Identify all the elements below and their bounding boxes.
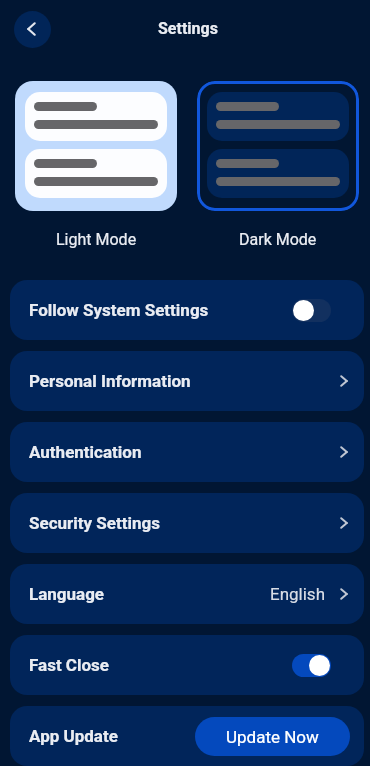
button[interactable]: Update Now [195, 717, 350, 756]
button[interactable]: Security Settings [10, 493, 364, 553]
staticText: Language [29, 584, 105, 604]
staticText: English [270, 584, 326, 604]
staticText: Fast Close [29, 655, 109, 675]
staticText: Authentication [29, 442, 142, 462]
staticText: App Update [29, 726, 118, 746]
button[interactable]: Light Mode [15, 81, 177, 211]
button[interactable]: App Update [10, 706, 364, 766]
button[interactable]: Language [10, 564, 364, 624]
staticText: Personal Information [29, 371, 191, 391]
staticText: Light Mode [56, 230, 137, 249]
button[interactable]: Enabled [292, 654, 331, 677]
staticText: Settings [158, 19, 218, 38]
button[interactable]: Follow System Settings [10, 280, 364, 340]
button[interactable]: Back [14, 11, 51, 48]
staticText: Dark Mode [239, 230, 317, 249]
staticText: Update Now [226, 727, 319, 747]
staticText: Security Settings [29, 513, 160, 533]
button[interactable]: Disabled [292, 299, 331, 322]
button[interactable]: Authentication [10, 422, 364, 482]
button[interactable]: Fast Close [10, 635, 364, 695]
button[interactable]: Dark Mode [197, 81, 359, 211]
staticText: Follow System Settings [29, 300, 209, 320]
button[interactable]: Personal Information [10, 351, 364, 411]
